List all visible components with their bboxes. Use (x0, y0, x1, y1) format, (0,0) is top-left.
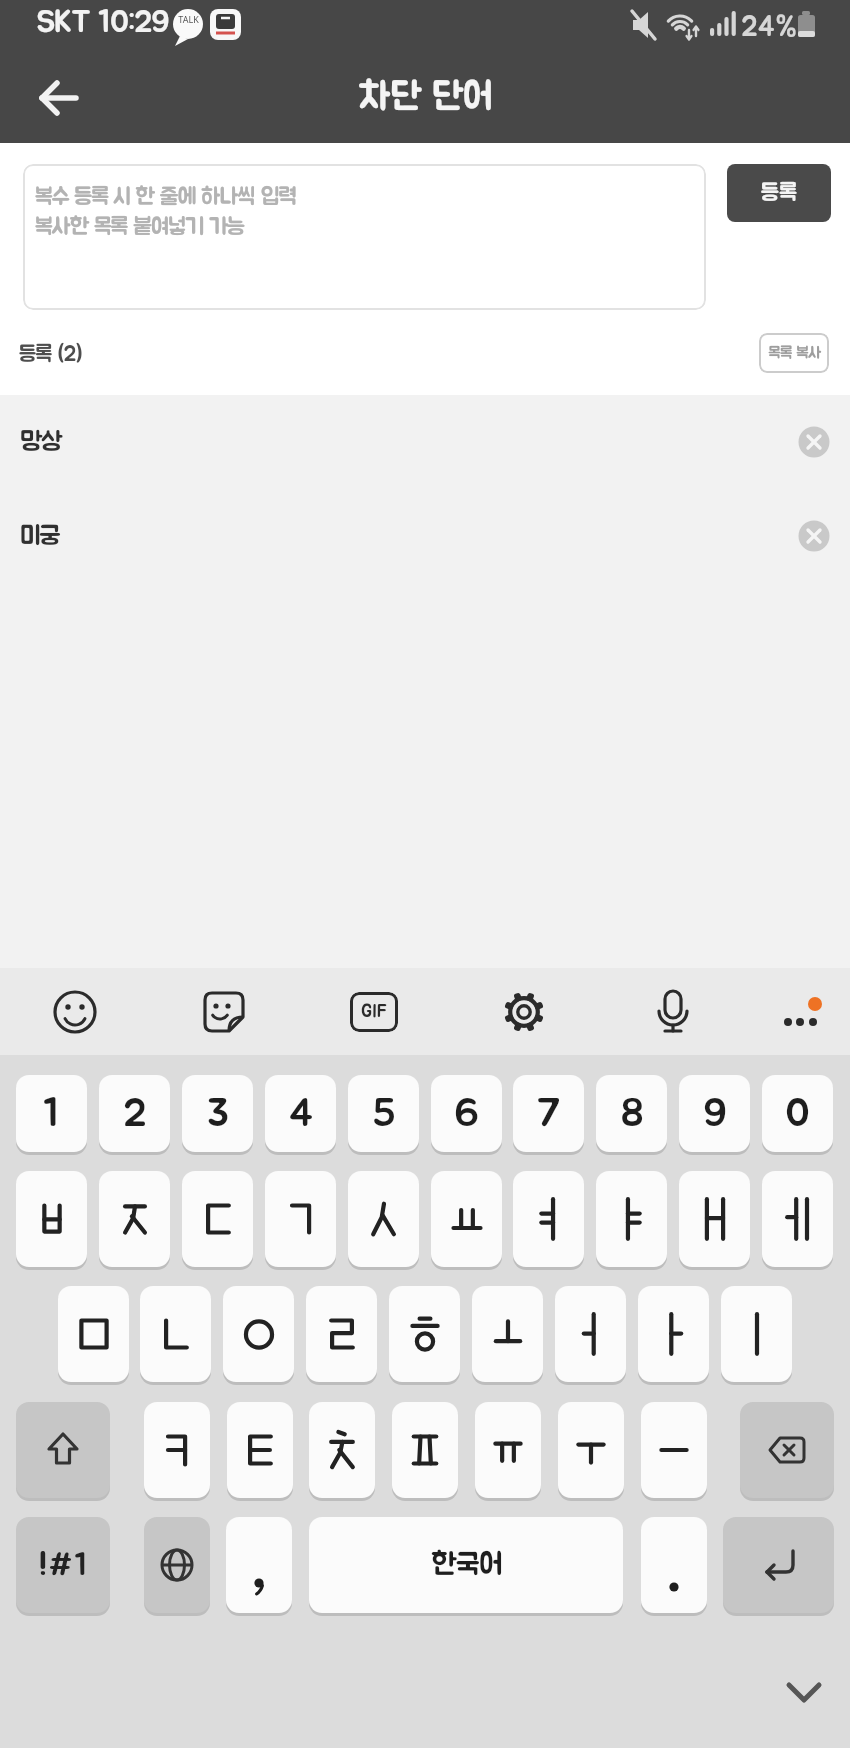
button[interactable]: 2 (99, 1075, 170, 1152)
staticText: 3 (207, 1094, 229, 1134)
staticText: 0 (785, 1094, 810, 1134)
button[interactable]: GIF (346, 984, 402, 1040)
button[interactable] (99, 1171, 170, 1267)
button[interactable] (392, 1402, 458, 1498)
button[interactable] (723, 1517, 834, 1613)
button[interactable]: 9 (679, 1075, 750, 1152)
button[interactable] (472, 1286, 543, 1382)
button[interactable] (227, 1402, 293, 1498)
button[interactable] (740, 1402, 834, 1498)
staticText: 차단 단어 (358, 79, 493, 117)
button[interactable] (306, 1286, 377, 1382)
staticText: 등록 (761, 182, 797, 205)
staticText: SKT 10:29 (36, 7, 169, 38)
button[interactable] (196, 984, 252, 1040)
staticText: 24% (741, 14, 797, 42)
button[interactable] (30, 75, 82, 121)
staticText: 4 (288, 1094, 314, 1134)
button[interactable] (558, 1402, 624, 1498)
button[interactable] (226, 1517, 292, 1613)
button[interactable] (309, 1402, 375, 1498)
staticText: 6 (454, 1094, 479, 1134)
button[interactable] (645, 984, 701, 1040)
staticText: 7 (536, 1094, 561, 1134)
button[interactable] (596, 1171, 667, 1267)
button[interactable] (182, 1171, 253, 1267)
button[interactable] (513, 1171, 584, 1267)
button[interactable]: 0 (762, 1075, 833, 1152)
staticText: 미궁 (20, 523, 60, 549)
button[interactable]: 목록 복사 (759, 333, 829, 373)
button[interactable] (762, 1171, 833, 1267)
staticText: 망상 (20, 429, 62, 455)
button[interactable]: 한국어 (309, 1517, 623, 1613)
staticText: TALK (178, 13, 199, 25)
button[interactable] (475, 1402, 541, 1498)
staticText: 한국어 (431, 1550, 502, 1580)
button[interactable] (58, 1286, 129, 1382)
button[interactable] (431, 1171, 502, 1267)
button[interactable] (16, 1171, 87, 1267)
button[interactable]: 5 (348, 1075, 419, 1152)
button[interactable] (223, 1286, 294, 1382)
button[interactable] (496, 984, 552, 1040)
button[interactable] (772, 992, 832, 1052)
button[interactable]: 망상 (0, 395, 850, 489)
button[interactable] (641, 1517, 707, 1613)
button[interactable] (638, 1286, 709, 1382)
button[interactable]: 미궁 (0, 489, 850, 583)
button[interactable]: 7 (513, 1075, 584, 1152)
staticText: 등록 (2) (19, 343, 82, 365)
button[interactable]: 6 (431, 1075, 502, 1152)
button[interactable] (265, 1171, 336, 1267)
button[interactable] (16, 1402, 110, 1498)
button[interactable]: 8 (596, 1075, 667, 1152)
staticText: 1 (43, 1094, 60, 1134)
button[interactable] (721, 1286, 792, 1382)
staticText: GIF (361, 1003, 387, 1021)
staticText: 9 (703, 1094, 727, 1134)
button[interactable] (679, 1171, 750, 1267)
staticText: 8 (620, 1094, 644, 1134)
staticText: 복수 등록 시 한 줄에 하나씩 입력 복사한 목록 붙여넣기 가능 (35, 186, 296, 239)
button[interactable] (348, 1171, 419, 1267)
button[interactable] (144, 1517, 210, 1613)
button[interactable] (47, 984, 103, 1040)
staticText: 5 (372, 1094, 396, 1134)
button[interactable] (774, 1667, 834, 1717)
button[interactable]: !#1 (16, 1517, 110, 1613)
staticText: !#1 (38, 1549, 88, 1581)
button[interactable] (555, 1286, 626, 1382)
button[interactable] (144, 1402, 210, 1498)
staticText: 목록 복사 (768, 345, 821, 361)
button[interactable]: 등록 (727, 164, 831, 222)
button[interactable] (389, 1286, 460, 1382)
staticText: 2 (123, 1094, 147, 1134)
button[interactable] (140, 1286, 211, 1382)
button[interactable]: 3 (182, 1075, 253, 1152)
button[interactable] (786, 508, 842, 564)
button[interactable]: 1 (16, 1075, 87, 1152)
button[interactable]: 4 (265, 1075, 336, 1152)
button[interactable]: 복수 등록 시 한 줄에 하나씩 입력 복사한 목록 붙여넣기 가능 (23, 164, 706, 310)
button[interactable] (786, 414, 842, 470)
button[interactable] (641, 1402, 707, 1498)
